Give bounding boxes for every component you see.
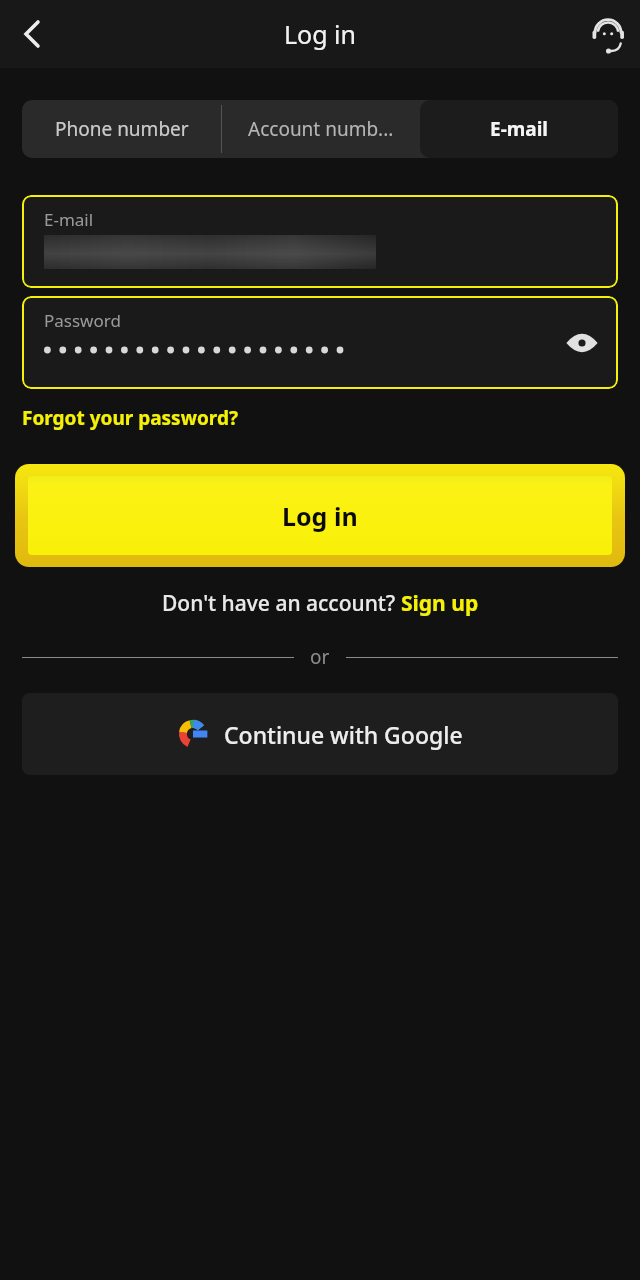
staticText: Don't have an account?: [162, 589, 401, 618]
staticText: Continue with Google: [224, 719, 463, 750]
button[interactable]: Account numb...: [222, 100, 420, 158]
staticText: or: [310, 644, 330, 670]
staticText: Account numb...: [248, 116, 394, 142]
button[interactable]: Back: [6, 8, 58, 60]
staticText: Sign up: [401, 589, 479, 618]
button[interactable]: Forgot your password?: [22, 403, 238, 433]
button[interactable]: E-mail: [22, 195, 618, 288]
staticText: E-mail: [490, 116, 548, 142]
button[interactable]: E-mail: [420, 100, 618, 158]
staticText: Password: [44, 309, 121, 332]
staticText: Log in: [284, 17, 357, 51]
staticText: Forgot your password?: [22, 405, 238, 431]
button[interactable]: Support: [584, 10, 632, 58]
button[interactable]: Log in: [15, 464, 625, 567]
staticText: E-mail: [44, 208, 94, 231]
button[interactable]: Continue with Google: [22, 693, 618, 775]
button[interactable]: Sign up: [401, 589, 479, 618]
button[interactable]: Show password: [558, 319, 606, 367]
staticText: Phone number: [55, 116, 189, 142]
staticText: Log in: [282, 499, 358, 533]
button[interactable]: Phone number: [22, 100, 221, 158]
button[interactable]: Password: [22, 296, 618, 389]
